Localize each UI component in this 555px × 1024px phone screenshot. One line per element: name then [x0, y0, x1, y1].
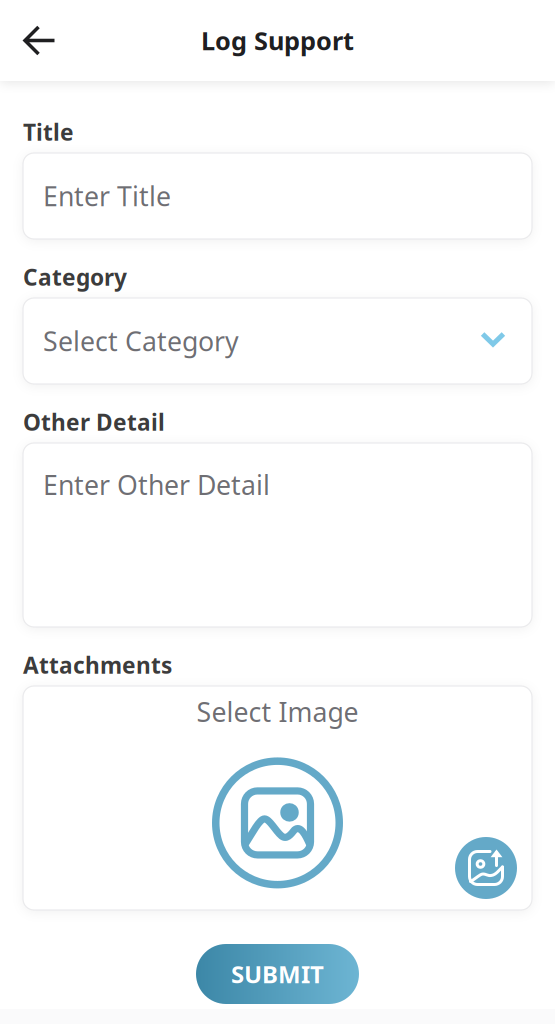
staticText: Title	[23, 117, 74, 147]
staticText: Other Detail	[23, 407, 165, 437]
button[interactable]: Enter Other Detail	[23, 443, 532, 627]
staticText: Category	[23, 262, 127, 292]
staticText: Enter Other Detail	[43, 467, 270, 502]
button[interactable]: Enter Title	[23, 153, 532, 239]
button[interactable]: Select Category	[23, 298, 532, 384]
staticText: SUBMIT	[231, 958, 324, 990]
staticText: Select Category	[43, 323, 239, 359]
button[interactable]: Upload image	[455, 837, 517, 899]
button[interactable]: SUBMIT	[196, 944, 359, 1004]
staticText: Attachments	[23, 650, 172, 680]
button[interactable]: Back	[12, 12, 68, 68]
staticText: Log Support	[201, 24, 354, 57]
staticText: Select Image	[196, 694, 358, 729]
staticText: Enter Title	[43, 178, 171, 214]
